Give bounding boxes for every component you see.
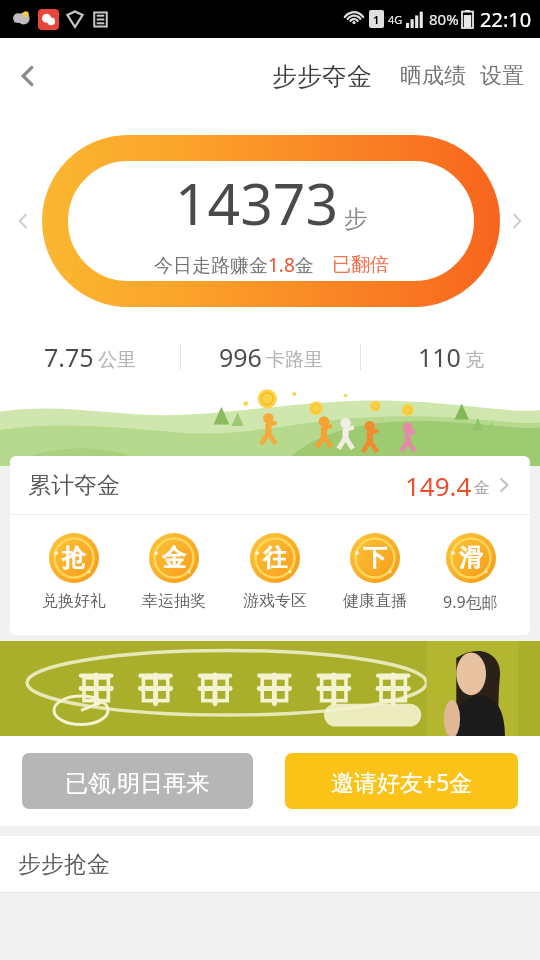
staticText: 已翻倍: [332, 253, 389, 277]
button[interactable]: 抢: [38, 533, 110, 611]
staticText: 1: [373, 12, 380, 27]
button[interactable]: 邀请好友+5金: [285, 753, 518, 809]
button[interactable]: 下: [339, 533, 411, 611]
staticText: 9.9包邮: [443, 591, 498, 613]
staticText: 设置: [480, 62, 524, 90]
staticText: 游戏专区: [243, 591, 307, 611]
staticText: 健康直播: [343, 591, 407, 611]
button[interactable]: Next day: [502, 206, 532, 236]
button[interactable]: 晒成绩: [398, 56, 468, 96]
staticText: 幸运抽奖: [142, 591, 206, 611]
staticText: 金: [162, 543, 186, 573]
button[interactable]: 7.75: [0, 340, 180, 374]
button[interactable]: 累计夺金: [10, 456, 530, 514]
staticText: 今日走路赚金1.8金: [154, 252, 314, 278]
button[interactable]: Previous day: [8, 206, 38, 236]
staticText: 110: [418, 340, 461, 374]
button[interactable]: Back: [0, 48, 56, 104]
staticText: 步: [344, 204, 368, 234]
staticText: 累计夺金: [28, 471, 120, 500]
staticText: 14373: [175, 164, 339, 242]
button[interactable]: 金: [138, 533, 210, 611]
button[interactable]: 110: [361, 340, 540, 374]
staticText: 80%: [429, 9, 459, 29]
staticText: 公里: [98, 348, 136, 372]
button[interactable]: 往: [239, 533, 311, 611]
button[interactable]: 14373: [42, 135, 500, 307]
button[interactable]: Advertisement banner: [0, 641, 540, 736]
staticText: 往: [263, 543, 287, 573]
button[interactable]: 996: [181, 340, 360, 374]
staticText: 克: [465, 348, 484, 372]
staticText: 邀请好友+5金: [331, 766, 473, 797]
staticText: 22:10: [480, 6, 532, 33]
staticText: 卡路里: [266, 348, 323, 372]
staticText: 抢: [62, 543, 86, 573]
button[interactable]: 设置: [478, 56, 526, 96]
staticText: 晒成绩: [400, 62, 466, 90]
button[interactable]: 步步抢金: [0, 836, 540, 892]
button[interactable]: 滑: [439, 533, 502, 613]
staticText: 7.75: [44, 340, 94, 374]
staticText: 金: [474, 478, 490, 498]
button[interactable]: 已领,明日再来: [22, 753, 253, 809]
staticText: 4G: [388, 12, 403, 27]
staticText: 下: [363, 543, 387, 573]
staticText: 149.4: [405, 468, 472, 503]
staticText: 996: [219, 340, 262, 374]
staticText: 步步夺金: [272, 61, 372, 92]
staticText: 已领,明日再来: [65, 766, 210, 797]
staticText: 兑换好礼: [42, 591, 106, 611]
staticText: 步步抢金: [18, 850, 110, 879]
staticText: 滑: [459, 543, 483, 573]
